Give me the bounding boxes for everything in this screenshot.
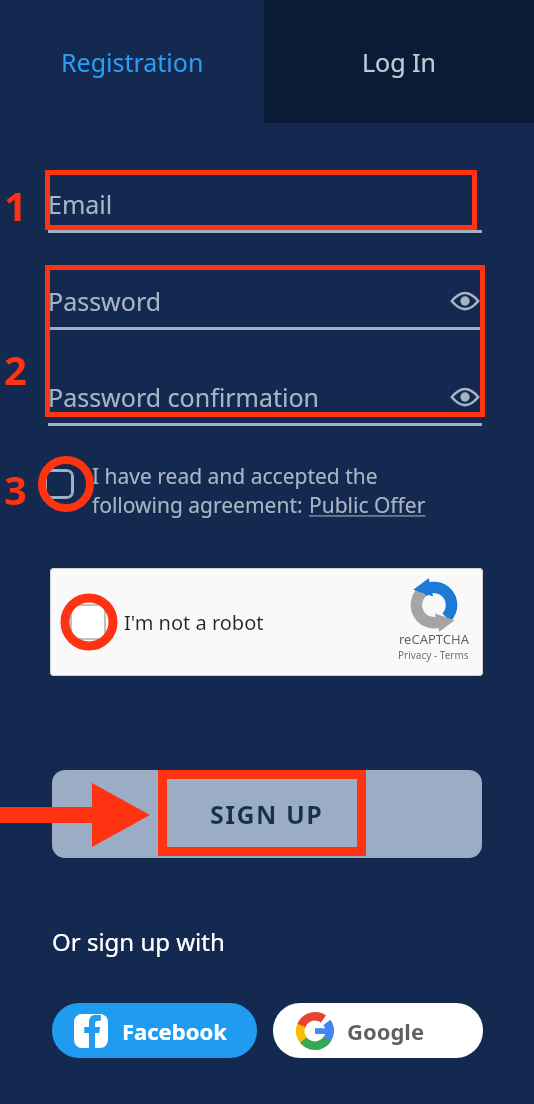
staticText: SIGN UP (210, 797, 324, 831)
staticText: following agreement: (92, 491, 309, 520)
staticText: I'm not a robot (124, 609, 264, 636)
staticText: Or sign up with (52, 925, 225, 958)
staticText: 2 (4, 342, 27, 396)
staticText: Google (347, 1016, 425, 1046)
button[interactable]: Facebook (52, 1003, 257, 1058)
button[interactable]: Password (48, 272, 482, 330)
button[interactable]: Google (273, 1003, 483, 1058)
button[interactable]: Show password confirmation (448, 380, 482, 414)
staticText: 1 (4, 178, 27, 232)
button[interactable]: Log In (264, 0, 534, 123)
staticText: Password confirmation (48, 380, 319, 414)
staticText: Log In (362, 45, 437, 79)
button[interactable]: Registration (0, 0, 264, 123)
button[interactable]: Password confirmation (48, 368, 482, 426)
button[interactable]: I have read and accepted the (44, 462, 464, 520)
button[interactable]: Show password (448, 284, 482, 318)
button[interactable]: Public Offer (309, 491, 426, 520)
staticText: reCAPTCHA (399, 630, 469, 648)
button[interactable]: I'm not a robot (50, 568, 483, 676)
staticText: 3 (4, 462, 27, 516)
staticText: Email (48, 187, 113, 221)
staticText: Facebook (122, 1016, 227, 1046)
button[interactable]: Email (48, 175, 482, 233)
staticText: Privacy - Terms (398, 648, 469, 662)
staticText: Password (48, 284, 162, 318)
staticText: I have read and accepted the (92, 462, 378, 491)
staticText: Registration (61, 45, 204, 79)
button[interactable]: SIGN UP (52, 770, 482, 858)
